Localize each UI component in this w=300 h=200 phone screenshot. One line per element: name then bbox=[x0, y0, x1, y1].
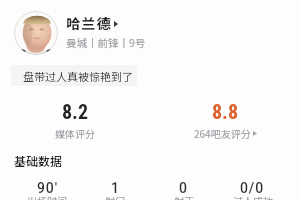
staticText: 过人成功 bbox=[233, 193, 273, 200]
staticText: 哈兰德 bbox=[66, 13, 113, 33]
staticText: 出场时间 bbox=[27, 193, 67, 200]
button[interactable]: 0 bbox=[149, 180, 218, 200]
staticText: 盘带过人真被惊艳到了 bbox=[23, 68, 133, 84]
button[interactable]: 90' bbox=[13, 180, 81, 200]
staticText: 264吧友评分 bbox=[194, 126, 251, 140]
button[interactable]: 8.8 bbox=[150, 100, 300, 140]
staticText: 0/0 bbox=[240, 180, 265, 196]
button[interactable]: 哈兰德 bbox=[66, 13, 118, 33]
staticText: 90' bbox=[37, 180, 58, 196]
button[interactable]: 盘带过人真被惊艳到了 bbox=[11, 65, 137, 86]
button[interactable]: 0/0 bbox=[218, 180, 287, 200]
staticText: 曼城丨前锋丨9号 bbox=[66, 35, 146, 50]
staticText: 8.8 bbox=[212, 100, 239, 123]
staticText: 8.2 bbox=[62, 100, 89, 123]
button[interactable]: 1 bbox=[81, 180, 149, 200]
staticText: 射正 bbox=[174, 193, 194, 200]
button[interactable]: 8.2 bbox=[0, 100, 150, 140]
staticText: 射门 bbox=[105, 193, 125, 200]
button[interactable]: Player photo bbox=[14, 11, 58, 55]
staticText: 0 bbox=[179, 180, 188, 196]
staticText: 基础数据 bbox=[14, 152, 63, 169]
staticText: 媒体评分 bbox=[55, 126, 95, 140]
staticText: 1 bbox=[111, 180, 120, 196]
